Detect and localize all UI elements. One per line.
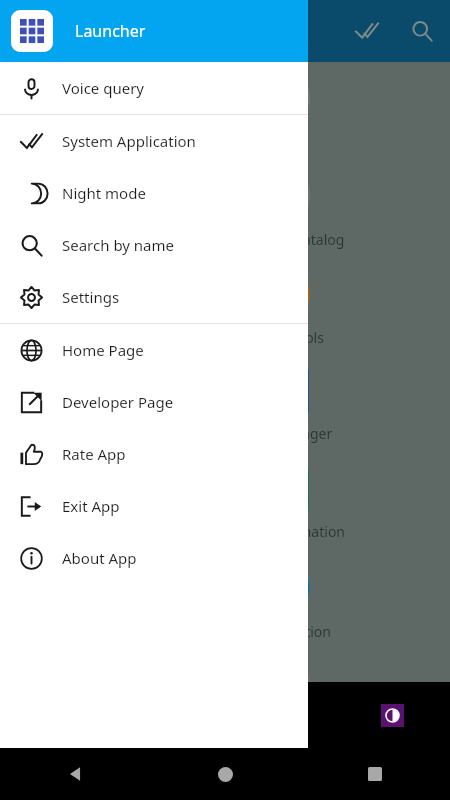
staticText: Rate App [62,444,126,464]
button[interactable]: Select all [345,9,389,53]
button[interactable]: Cloud Manager [0,356,450,454]
staticText: Developer Page [62,392,174,412]
staticText: Voice query [62,78,145,98]
button[interactable]: Home Page [0,324,308,376]
button[interactable]: About App [0,532,308,584]
button[interactable]: Search [400,9,444,53]
staticText: Night mode [62,183,146,203]
button[interactable]: Home [150,748,300,800]
button[interactable]: Night mode [0,167,308,219]
staticText: Exit App [62,496,120,516]
button[interactable]: Developer Page [0,376,308,428]
button[interactable]: Night mode toggle [381,704,404,727]
button[interactable]: Settings [0,271,308,323]
staticText: Apps cloud catalog [220,230,345,249]
staticText: Search by name [62,235,175,255]
button[interactable]: Launcher [0,0,308,62]
staticText: Home Page [62,340,144,360]
button[interactable]: Apps cloud catalog [0,160,450,258]
button[interactable]: Face Detection [0,552,450,650]
button[interactable]: Device Information [0,454,450,552]
staticText: Face Detection [234,622,331,641]
button[interactable]: Rate App [0,428,308,480]
staticText: Launcher [75,20,146,42]
button[interactable]: Recent apps [300,748,450,800]
button[interactable]: Search by name [0,219,308,271]
button[interactable]: AltStore [0,62,450,160]
button[interactable]: Ƀ [0,258,450,356]
staticText: System Application [62,131,196,151]
button[interactable] [0,650,450,748]
staticText: About App [62,548,137,568]
staticText: Cloud Manager [231,424,333,443]
button[interactable]: Back [0,748,150,800]
button[interactable]: System Application [0,115,308,167]
button[interactable]: Voice query [0,62,308,114]
staticText: AltStore [256,132,309,151]
staticText: Device Information [219,522,346,541]
staticText: Bitcoin Tools [241,328,324,347]
staticText: Settings [62,287,120,307]
button[interactable]: Exit App [0,480,308,532]
